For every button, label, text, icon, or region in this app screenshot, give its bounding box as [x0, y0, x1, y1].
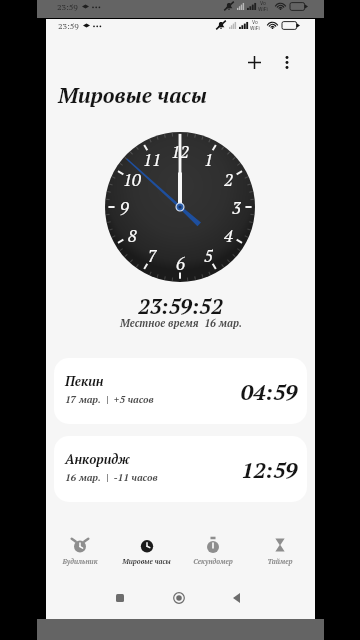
staticText: Анкоридж	[65, 450, 130, 467]
staticText: Vo	[260, 0, 266, 6]
staticText: 6	[176, 252, 185, 274]
staticText: 23:59	[57, 1, 78, 12]
button[interactable]: Будильник	[47, 537, 113, 571]
staticText: 8	[128, 224, 137, 246]
staticText: WiFi	[258, 6, 268, 12]
staticText: Будильник	[62, 557, 98, 566]
button[interactable]: Мировые часы	[113, 537, 179, 571]
button[interactable]: Home	[168, 587, 190, 609]
staticText: 12	[171, 140, 189, 162]
staticText: Пекин	[65, 372, 104, 389]
staticText: Мировые часы	[122, 557, 171, 566]
staticText: 23:59:52	[138, 292, 223, 320]
button[interactable]: Back	[225, 587, 247, 609]
staticText: 11	[143, 148, 161, 170]
staticText: 4	[224, 224, 233, 246]
staticText: 12:59	[241, 455, 298, 484]
staticText: WiFi	[250, 25, 260, 31]
staticText: 2	[224, 168, 233, 190]
button[interactable]: Секундомер	[180, 537, 246, 571]
staticText: 1	[204, 148, 213, 170]
staticText: 10	[123, 168, 141, 190]
staticText: 9	[120, 196, 129, 218]
staticText: 16 мар. | -11 часов	[65, 471, 158, 484]
staticText: 3	[232, 196, 241, 218]
staticText: 17 мар. | +5 часов	[65, 393, 154, 406]
button[interactable]: Add city	[239, 47, 269, 77]
button[interactable]: Recents	[109, 587, 131, 609]
staticText: Vo	[252, 19, 258, 25]
button[interactable]: More options	[272, 47, 302, 77]
staticText: 7	[148, 244, 157, 266]
button[interactable]: Анкоридж	[54, 436, 307, 502]
staticText: 04:59	[241, 377, 298, 406]
staticText: 23:59	[58, 20, 79, 31]
staticText: Таймер	[267, 557, 293, 566]
button[interactable]: Таймер	[247, 537, 313, 571]
staticText: Секундомер	[193, 557, 233, 566]
button[interactable]: Пекин	[54, 358, 307, 424]
staticText: Мировые часы	[58, 81, 207, 109]
staticText: 5	[204, 244, 213, 266]
staticText: Местное время 16 мар.	[120, 316, 242, 330]
